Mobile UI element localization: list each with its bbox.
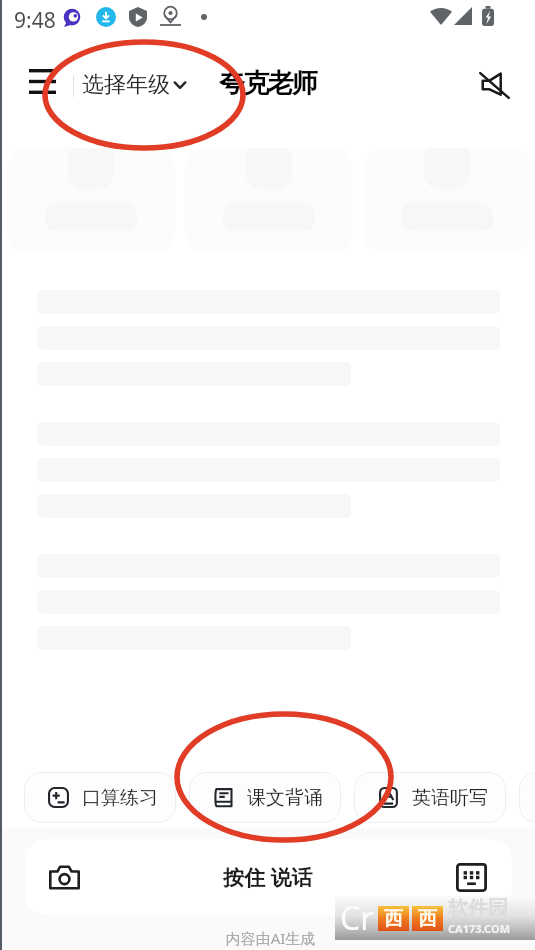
staticText: 按住 说话 xyxy=(223,863,313,892)
staticText: Cr xyxy=(340,896,374,940)
button[interactable] xyxy=(519,772,535,823)
staticText: 9:48 xyxy=(14,6,56,35)
staticText: CA173.COM xyxy=(448,921,511,936)
staticText: 软件园 xyxy=(448,896,508,921)
staticText: 选择年级 xyxy=(82,71,170,99)
button[interactable]: 口算练习 xyxy=(24,772,176,823)
staticText: 口算练习 xyxy=(82,786,158,810)
staticText: 夸克老师 xyxy=(219,67,316,100)
button[interactable]: Mute xyxy=(474,65,514,105)
button[interactable]: Camera xyxy=(25,839,512,915)
button[interactable]: Menu xyxy=(19,58,65,104)
button[interactable]: 课文背诵 xyxy=(189,772,341,823)
staticText: 内容由AI生成 xyxy=(3,928,535,948)
staticText: 西 xyxy=(384,907,403,931)
other: Camera xyxy=(47,860,81,894)
staticText: 课文背诵 xyxy=(247,786,323,810)
staticText: 英语听写 xyxy=(412,786,488,810)
button[interactable]: 英语听写 xyxy=(354,772,506,823)
staticText: 西 xyxy=(418,907,437,931)
button[interactable]: 选择年级 xyxy=(82,66,186,104)
other: Keyboard xyxy=(454,860,488,894)
